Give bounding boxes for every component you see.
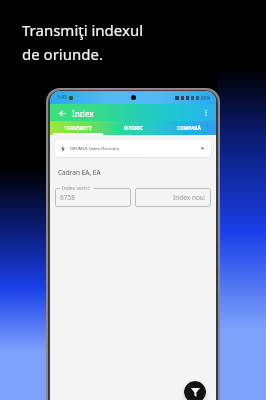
button[interactable]: Back	[56, 107, 68, 119]
button[interactable]: DRUMUL Valea Oriorului	[55, 140, 211, 157]
staticText: Index	[72, 108, 94, 119]
staticText: COMPARĂ	[177, 125, 201, 132]
staticText: 6758	[60, 193, 75, 202]
staticText: Index nou:	[173, 193, 206, 202]
staticText: 5:43	[57, 94, 67, 101]
button[interactable]: Index nou:	[135, 188, 211, 207]
button[interactable]: COMPARĂ	[161, 121, 216, 135]
staticText: TRANSMITE	[64, 125, 92, 132]
button[interactable]: TRANSMITE	[50, 121, 106, 135]
staticText: Transmiţi indexul	[22, 20, 144, 40]
staticText: de oriunde.	[22, 44, 103, 64]
staticText: ISTORIC	[124, 125, 144, 132]
button[interactable]: Trimite index	[184, 381, 206, 400]
staticText: Cadran EA, EA	[58, 168, 101, 177]
staticText: DRUMUL Valea Oriorului	[70, 146, 119, 152]
staticText: 85%	[201, 95, 210, 101]
staticText: Index vechi:	[62, 185, 91, 192]
button[interactable]: ISTORIC	[106, 121, 161, 135]
button[interactable]: 6758	[55, 188, 131, 207]
button[interactable]: More options	[200, 107, 212, 119]
